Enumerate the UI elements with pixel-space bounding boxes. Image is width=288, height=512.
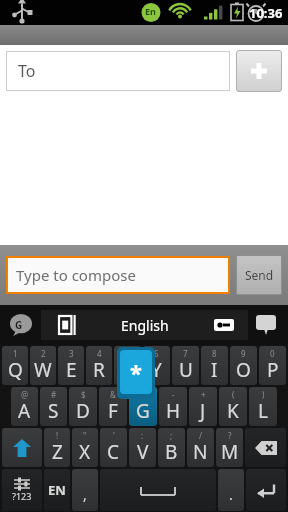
staticText: G (136, 398, 150, 424)
button[interactable]: ( (219, 387, 247, 426)
staticText: A (18, 398, 31, 424)
button[interactable]: @ (11, 387, 38, 426)
button[interactable]: 7 (172, 346, 199, 385)
button[interactable]: Messages (252, 311, 280, 339)
staticText: 2 (41, 348, 46, 359)
button[interactable]: Send (236, 255, 282, 295)
staticText: * (141, 389, 146, 400)
button[interactable]: Backspace (245, 428, 286, 467)
button[interactable]: 0 (259, 346, 286, 385)
staticText: N (193, 439, 208, 465)
button[interactable]: Google Plus (6, 310, 36, 340)
staticText: 8 (212, 348, 217, 359)
button[interactable]: & (99, 387, 127, 426)
staticText: To (18, 60, 36, 82)
button[interactable]: ; (158, 428, 185, 467)
staticText: H (166, 398, 181, 424)
staticText: English (121, 316, 169, 335)
button[interactable]: To (6, 51, 230, 91)
staticText: V (137, 439, 149, 465)
button[interactable]: $ (69, 387, 97, 426)
button[interactable]: EN (44, 469, 70, 511)
button[interactable]: " (72, 428, 98, 467)
staticText: J (200, 398, 206, 424)
staticText: 4 (97, 348, 102, 359)
button[interactable]: 3 (58, 346, 84, 385)
button[interactable]: 1 (2, 346, 28, 385)
staticText: Type to compose (16, 265, 136, 285)
staticText: G (15, 318, 23, 332)
staticText: " (83, 430, 87, 441)
staticText: Y (151, 357, 162, 383)
button[interactable]: Add recipient (236, 50, 282, 92)
staticText: D (76, 398, 90, 424)
staticText: Q (8, 357, 23, 383)
button[interactable]: 8 (201, 346, 228, 385)
button[interactable]: . (218, 469, 244, 511)
staticText: ( (232, 389, 235, 400)
staticText: En (145, 5, 156, 17)
staticText: 5 (125, 348, 130, 359)
staticText: 0 (270, 348, 275, 359)
staticText: # (51, 389, 57, 400)
staticText: X (79, 439, 91, 465)
staticText: ) (262, 389, 265, 400)
button[interactable]: ?123 (2, 469, 42, 511)
staticText: ; (170, 430, 173, 441)
staticText: W (34, 357, 52, 383)
staticText: Z (52, 439, 63, 465)
staticText: B (165, 439, 178, 465)
staticText: - (172, 389, 175, 400)
button[interactable]: : (129, 428, 156, 467)
button[interactable]: 2 (30, 346, 56, 385)
staticText: F (108, 398, 118, 424)
staticText: / (199, 430, 202, 441)
staticText: M (221, 439, 239, 465)
button[interactable]: 9 (230, 346, 257, 385)
staticText: 7 (183, 348, 188, 359)
button[interactable]: 6 (143, 346, 170, 385)
staticText: Send (245, 267, 274, 283)
button[interactable]: * (129, 387, 157, 426)
button[interactable]: - (159, 387, 187, 426)
staticText: , (83, 485, 87, 504)
staticText: ?123 (12, 490, 32, 502)
staticText: + (201, 389, 206, 400)
staticText: . (229, 485, 233, 504)
button[interactable]: 5 (114, 346, 141, 385)
button[interactable]: # (40, 387, 67, 426)
staticText: ? (228, 430, 232, 441)
staticText: @ (21, 389, 29, 400)
staticText: R (93, 357, 105, 383)
staticText: ' (113, 430, 115, 441)
staticText: 6 (154, 348, 159, 359)
button[interactable]: + (189, 387, 217, 426)
staticText: 3 (69, 348, 74, 359)
staticText: ! (56, 430, 59, 441)
button[interactable]: / (187, 428, 214, 467)
button[interactable]: Type to compose (6, 256, 230, 294)
staticText: 1 (13, 348, 18, 359)
button[interactable]: ? (216, 428, 243, 467)
staticText: E (66, 357, 77, 383)
staticText: S (48, 398, 59, 424)
button[interactable]: Space (100, 469, 216, 511)
staticText: EN (48, 481, 66, 499)
button[interactable]: ) (249, 387, 277, 426)
button[interactable]: English (41, 310, 248, 340)
staticText: 9 (241, 348, 246, 359)
staticText: $ (81, 389, 86, 400)
staticText: I (211, 357, 218, 383)
button[interactable]: , (72, 469, 98, 511)
button[interactable]: Enter (246, 469, 286, 511)
button[interactable]: Shift (2, 428, 42, 467)
staticText: L (258, 398, 268, 424)
button[interactable]: 4 (86, 346, 112, 385)
staticText: U (179, 357, 193, 383)
staticText: O (236, 357, 251, 383)
button[interactable]: ! (44, 428, 70, 467)
staticText: * (130, 357, 142, 387)
staticText: K (227, 398, 239, 424)
staticText: & (110, 389, 116, 400)
button[interactable]: ' (100, 428, 127, 467)
